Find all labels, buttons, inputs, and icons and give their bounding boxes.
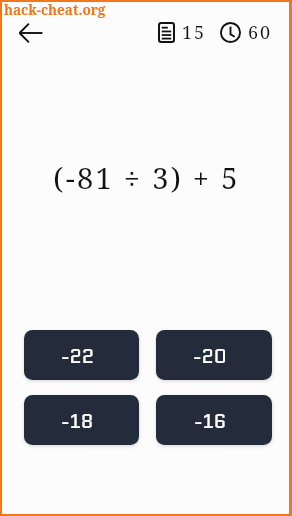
staticText: (-81 ÷ 3) + 5 — [3, 158, 290, 197]
staticText: -16 — [194, 407, 227, 435]
staticText: 60 — [248, 20, 273, 45]
staticText: hack-cheat.org — [4, 1, 106, 19]
staticText: 15 — [182, 20, 207, 45]
button[interactable]: -16 — [156, 395, 272, 445]
button[interactable]: Time remaining — [220, 20, 273, 45]
staticText: -22 — [61, 342, 95, 370]
button[interactable]: Back — [16, 18, 46, 48]
staticText: -20 — [193, 342, 227, 370]
button[interactable]: Questions remaining — [158, 20, 207, 45]
button[interactable]: -18 — [24, 395, 139, 445]
button[interactable]: -20 — [156, 330, 272, 380]
staticText: -18 — [61, 407, 94, 435]
button[interactable]: -22 — [24, 330, 139, 380]
